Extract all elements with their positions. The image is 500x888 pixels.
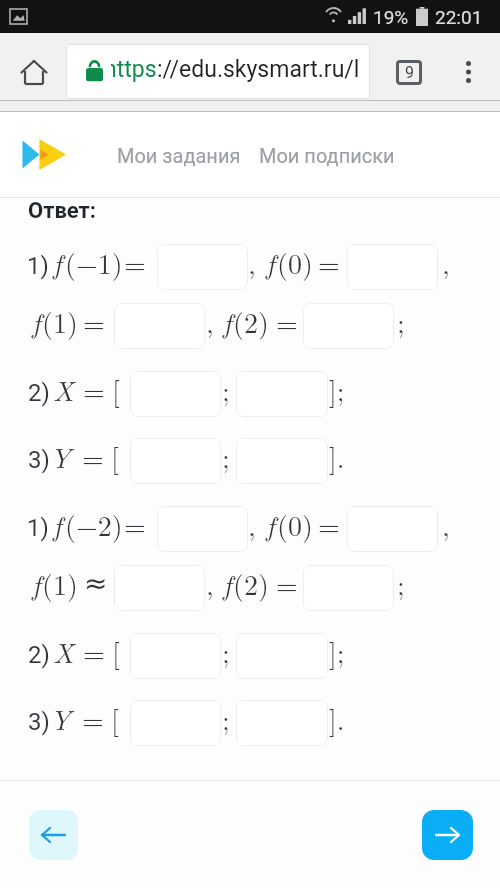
staticText: ]; <box>329 631 345 671</box>
button[interactable] <box>236 371 328 417</box>
staticText: ; <box>222 369 230 409</box>
button[interactable] <box>130 633 221 679</box>
staticText: (1) <box>42 563 78 603</box>
staticText: 2) <box>28 641 50 669</box>
staticText: 9 <box>405 63 414 82</box>
staticText: (0) <box>277 504 313 544</box>
staticText: = <box>124 504 146 544</box>
staticText: ; <box>222 698 230 738</box>
button[interactable] <box>236 700 328 746</box>
button[interactable] <box>114 303 205 349</box>
staticText: f <box>53 242 62 282</box>
staticText: (1) <box>42 301 78 341</box>
button[interactable]: Back <box>29 810 78 860</box>
staticText: ; <box>397 301 405 341</box>
staticText: f <box>32 301 41 341</box>
staticText: f <box>266 242 275 282</box>
staticText: X <box>53 631 74 671</box>
button[interactable]: Home <box>12 49 56 95</box>
staticText: [ <box>112 369 120 409</box>
staticText: X <box>53 369 74 409</box>
button[interactable]: https <box>66 44 370 99</box>
staticText: ; <box>222 436 230 476</box>
button[interactable]: Next <box>422 810 473 860</box>
staticText: f <box>223 563 232 603</box>
staticText: (0) <box>277 242 313 282</box>
staticText: , <box>248 504 256 544</box>
staticText: https <box>111 56 157 83</box>
button[interactable] <box>130 371 221 417</box>
staticText: = <box>318 242 340 282</box>
staticText: [ <box>112 631 120 671</box>
staticText: , <box>442 504 450 544</box>
button[interactable] <box>114 565 205 611</box>
staticText: Y <box>50 698 71 738</box>
staticText: , <box>206 301 214 341</box>
staticText: 3) <box>28 446 50 474</box>
staticText: 22:01 <box>435 6 483 28</box>
staticText: f <box>266 504 275 544</box>
staticText: ]; <box>329 369 345 409</box>
staticText: = <box>276 301 298 341</box>
staticText: [ <box>111 436 119 476</box>
staticText: ]. <box>329 698 345 738</box>
staticText: f <box>223 301 232 341</box>
button[interactable] <box>303 303 394 349</box>
button[interactable]: Мои подписки <box>257 142 397 169</box>
button[interactable]: Tabs <box>387 50 431 94</box>
staticText: f <box>53 504 62 544</box>
staticText: ://edu.skysmart.ru/l <box>157 56 360 83</box>
staticText: ; <box>397 563 405 603</box>
staticText: (−1) <box>65 242 123 282</box>
staticText: , <box>442 242 450 282</box>
staticText: 1) <box>27 252 49 280</box>
button[interactable] <box>347 244 438 290</box>
staticText: = <box>83 631 105 671</box>
button[interactable] <box>236 438 328 484</box>
button[interactable] <box>130 438 221 484</box>
staticText: , <box>248 242 256 282</box>
staticText: (−2) <box>65 504 123 544</box>
staticText: ]. <box>329 436 345 476</box>
staticText: Ответ: <box>28 198 97 224</box>
staticText: ; <box>222 631 230 671</box>
staticText: = <box>83 369 105 409</box>
staticText: (2) <box>233 301 269 341</box>
staticText: = <box>83 301 105 341</box>
staticText: = <box>124 242 146 282</box>
staticText: ≈ <box>84 567 108 600</box>
button[interactable] <box>130 700 221 746</box>
staticText: 2) <box>28 379 50 407</box>
staticText: , <box>206 563 214 603</box>
staticText: 3) <box>28 708 50 736</box>
button[interactable]: Мои задания <box>115 142 243 169</box>
button[interactable] <box>236 633 328 679</box>
staticText: 1) <box>27 514 49 542</box>
button[interactable] <box>157 244 248 290</box>
button[interactable] <box>347 506 438 552</box>
staticText: = <box>82 436 104 476</box>
staticText: = <box>82 698 104 738</box>
button[interactable] <box>303 565 394 611</box>
button[interactable] <box>157 506 248 552</box>
staticText: (2) <box>233 563 269 603</box>
staticText: = <box>318 504 340 544</box>
staticText: Y <box>50 436 71 476</box>
staticText: [ <box>111 698 119 738</box>
staticText: f <box>32 563 41 603</box>
staticText: 19% <box>373 6 409 28</box>
button[interactable]: More options <box>446 50 490 94</box>
staticText: = <box>276 563 298 603</box>
